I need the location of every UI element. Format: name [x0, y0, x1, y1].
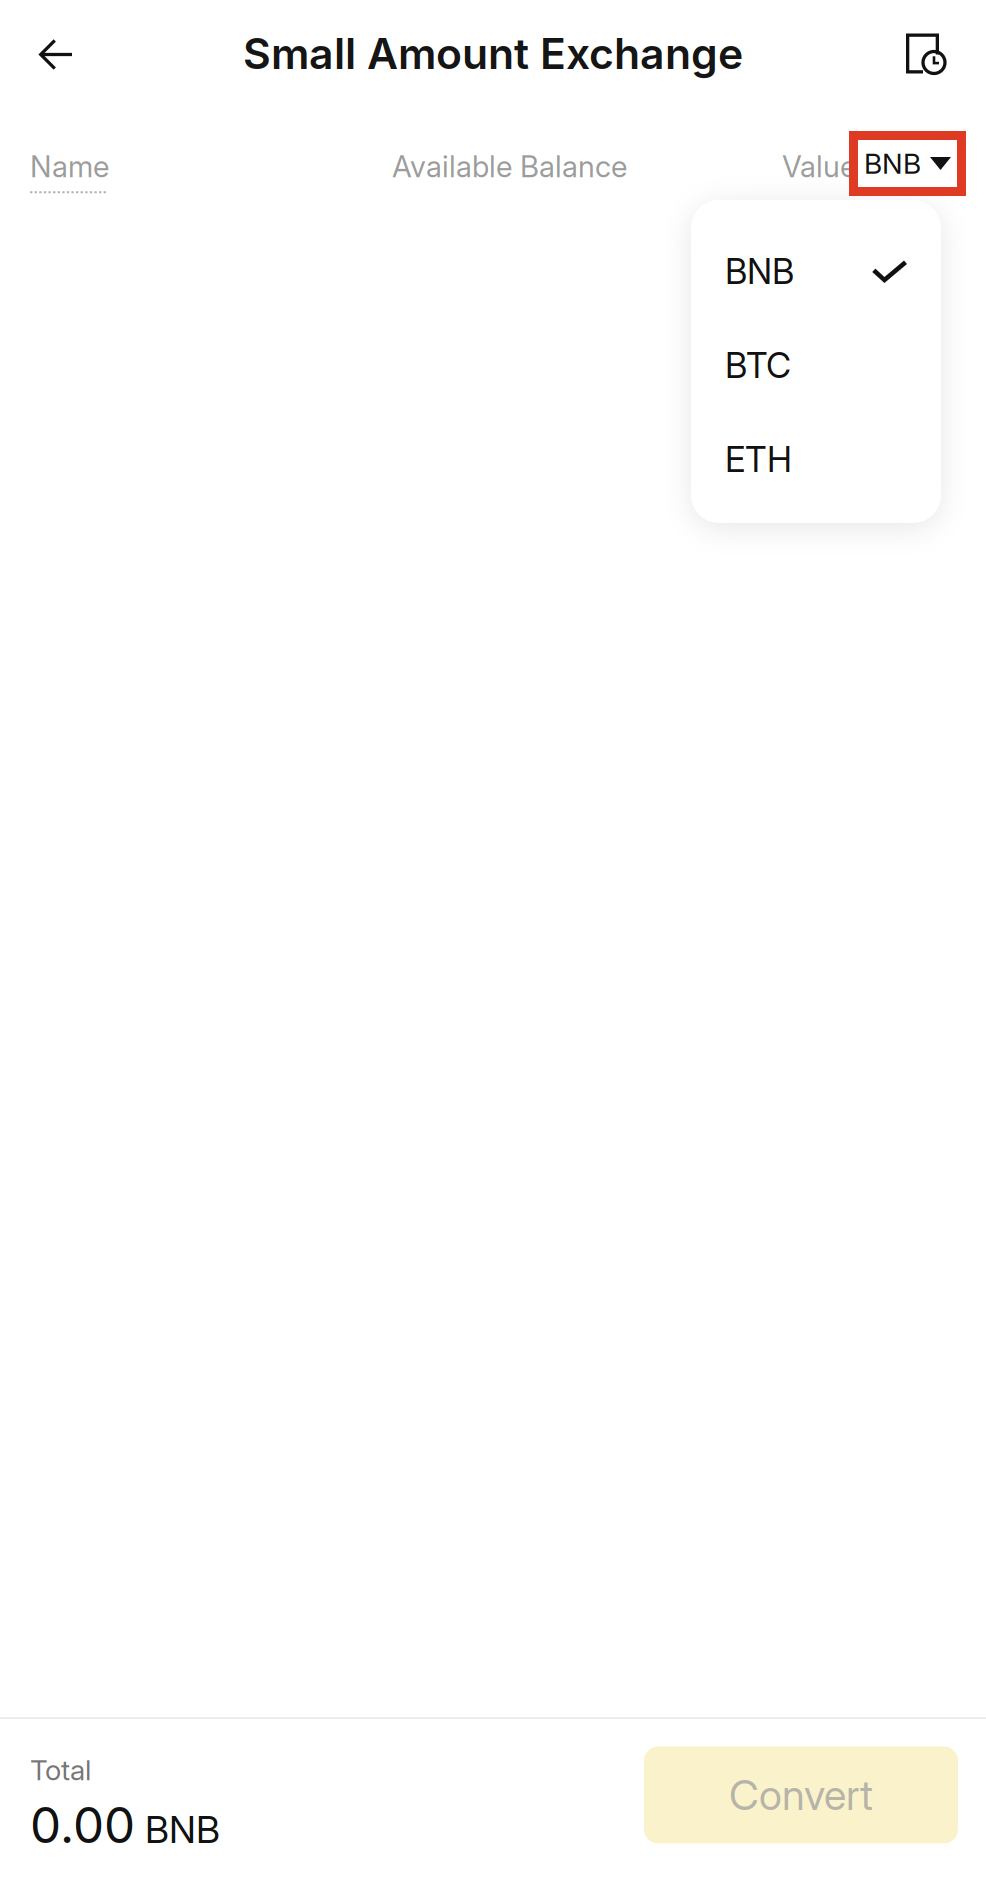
staticText: Name: [30, 149, 109, 184]
staticText: Total: [30, 1753, 91, 1787]
staticText: Value: [782, 149, 856, 184]
staticText: BNB: [864, 147, 921, 180]
staticText: BTC: [725, 344, 791, 386]
staticText: ETH: [725, 438, 792, 480]
button[interactable]: Select quote currency, BNB: [849, 131, 966, 196]
button[interactable]: BTC: [691, 314, 941, 408]
button[interactable]: Transaction history: [883, 11, 969, 97]
staticText: Available Balance: [392, 149, 627, 184]
button[interactable]: Convert: [644, 1746, 958, 1843]
staticText: Small Amount Exchange: [243, 28, 743, 79]
button[interactable]: ETH: [691, 408, 941, 502]
staticText: Convert: [729, 1770, 873, 1820]
button[interactable]: BNB: [691, 220, 941, 314]
staticText: 0.00: [30, 1795, 135, 1855]
staticText: BNB: [725, 250, 794, 292]
button[interactable]: Back: [12, 11, 98, 97]
staticText: BNB: [145, 1807, 220, 1852]
